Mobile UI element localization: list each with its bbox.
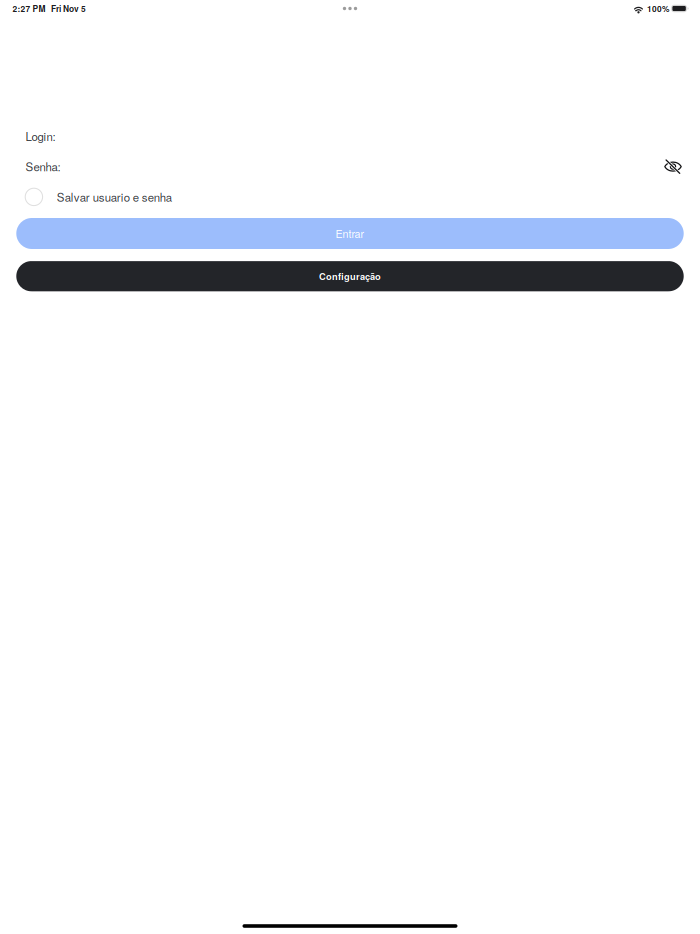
staticText: Configuração <box>319 269 381 283</box>
staticText: 2:27 PM <box>12 2 45 14</box>
button[interactable]: Mostrar senha <box>658 154 688 180</box>
button[interactable]: Salvar usuario e senha <box>0 186 700 208</box>
staticText: 100% <box>647 2 669 14</box>
button[interactable]: Entrar <box>16 218 684 249</box>
staticText: Fri Nov 5 <box>51 2 86 14</box>
staticText: Entrar <box>335 226 364 241</box>
staticText: Senha: <box>26 158 61 175</box>
button[interactable]: Configuração <box>16 261 684 291</box>
staticText: Salvar usuario e senha <box>57 189 172 205</box>
staticText: Login: <box>26 128 56 144</box>
